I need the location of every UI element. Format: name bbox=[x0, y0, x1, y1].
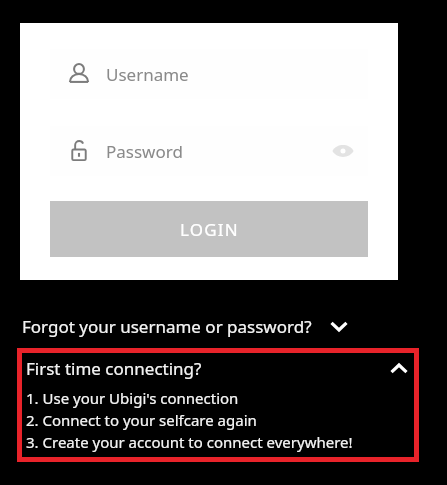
staticText: Username bbox=[106, 63, 189, 86]
button[interactable]: Show password bbox=[326, 134, 360, 168]
staticText: LOGIN bbox=[180, 218, 239, 241]
button[interactable]: Username bbox=[50, 49, 368, 99]
staticText: Forgot your username or password? bbox=[22, 315, 312, 338]
button[interactable]: Password bbox=[50, 126, 368, 176]
staticText: Password bbox=[106, 140, 183, 163]
staticText: 3. Create your account to connect everyw… bbox=[26, 432, 353, 454]
button[interactable]: Forgot your username or password? bbox=[22, 308, 422, 344]
button[interactable]: First time connecting? bbox=[22, 353, 414, 457]
other: Password bbox=[66, 138, 92, 164]
button[interactable]: LOGIN bbox=[50, 201, 368, 257]
other: Collapse bbox=[384, 354, 414, 384]
other: Username bbox=[66, 61, 92, 87]
staticText: 1. Use your Ubigi's connection bbox=[26, 388, 239, 410]
staticText: 2. Connect to your selfcare again bbox=[26, 410, 257, 432]
staticText: First time connecting? bbox=[26, 357, 202, 380]
other: Expand bbox=[324, 311, 354, 341]
